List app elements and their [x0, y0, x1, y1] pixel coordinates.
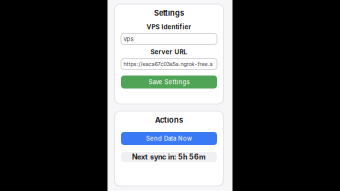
button[interactable]: Send Data Now — [121, 132, 217, 145]
staticText: Server URL — [150, 48, 187, 56]
staticText: Settings — [154, 8, 184, 17]
button[interactable]: Save Settings — [121, 75, 217, 88]
staticText: https://eaca67c03a5a.ngrok-free.a — [123, 61, 212, 67]
staticText: Actions — [155, 115, 183, 124]
staticText: Next sync in: 5h 56m — [132, 153, 206, 161]
staticText: Save Settings — [148, 78, 189, 86]
staticText: vps — [123, 35, 133, 43]
staticText: VPS Identifier — [146, 23, 191, 31]
staticText: Send Data Now — [146, 135, 192, 142]
